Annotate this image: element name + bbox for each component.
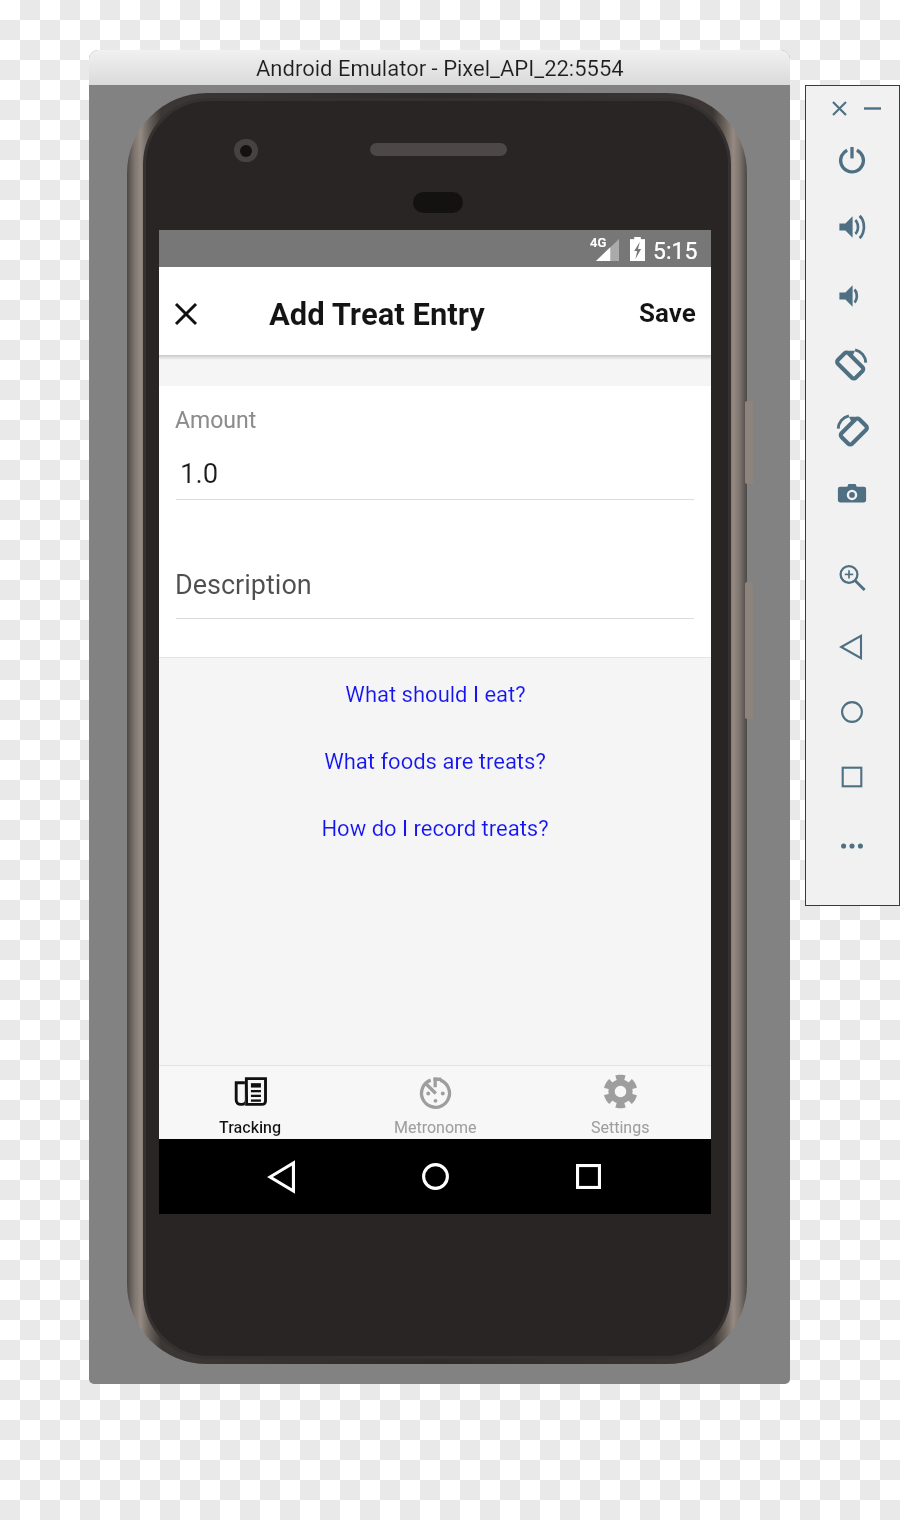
button[interactable]: Minimize (860, 96, 884, 120)
staticText: Metronome (394, 1118, 477, 1137)
staticText: Save (639, 298, 696, 328)
staticText: Amount (175, 407, 257, 434)
button[interactable]: Volume down (828, 272, 876, 320)
button[interactable]: Recents (562, 1139, 614, 1214)
staticText: What foods are treats? (324, 749, 546, 775)
button[interactable]: Save (624, 280, 711, 342)
button[interactable]: Home (409, 1139, 461, 1214)
button[interactable]: Home (828, 688, 876, 736)
button[interactable]: Settings (528, 1066, 712, 1139)
button[interactable]: What foods are treats? (159, 726, 711, 793)
staticText: 4G (590, 235, 607, 250)
button[interactable]: Screenshot (828, 470, 876, 518)
staticText: Android Emulator - Pixel_API_22:5554 (256, 56, 624, 82)
staticText: How do I record treats? (321, 816, 549, 842)
button[interactable]: Recents (828, 753, 876, 801)
button[interactable]: Volume up (828, 203, 876, 251)
staticText: Description (175, 569, 312, 601)
button[interactable]: Power (828, 135, 876, 183)
button[interactable]: What should I eat? (159, 658, 711, 726)
staticText: Add Treat Entry (269, 296, 485, 332)
staticText: What should I eat? (345, 682, 526, 708)
button[interactable]: More (828, 822, 876, 870)
staticText: Tracking (219, 1118, 282, 1137)
button[interactable]: Tracking (158, 1066, 342, 1139)
button[interactable]: Close (154, 282, 218, 346)
staticText: Settings (591, 1118, 650, 1137)
button[interactable]: Rotate right (828, 406, 876, 454)
button[interactable]: Metronome (343, 1066, 527, 1139)
button[interactable]: Zoom (828, 554, 876, 602)
button[interactable]: How do I record treats? (159, 793, 711, 860)
button[interactable]: Back (828, 623, 876, 671)
staticText: 5:15 (653, 238, 698, 265)
button[interactable]: Back (256, 1139, 308, 1214)
button[interactable]: Close emulator (827, 96, 851, 120)
button[interactable]: Rotate left (828, 340, 876, 388)
staticText: 1.0 (180, 457, 219, 489)
